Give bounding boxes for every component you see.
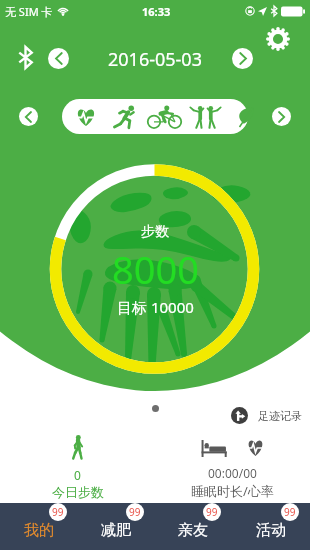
button[interactable]: 0 xyxy=(0,429,155,503)
button[interactable]: Next day xyxy=(232,48,253,69)
staticText: 8000 xyxy=(112,243,199,295)
button[interactable]: 活动 xyxy=(232,503,310,550)
button[interactable]: 足迹记录 xyxy=(231,407,302,424)
staticText: 99 xyxy=(206,505,218,519)
staticText: 0 xyxy=(74,467,81,483)
staticText: 99 xyxy=(52,505,64,519)
button[interactable]: Previous day xyxy=(48,48,69,69)
button[interactable]: 亲友 xyxy=(154,503,232,550)
staticText: 00:00/00 xyxy=(208,465,257,481)
button[interactable]: Settings xyxy=(262,23,293,54)
staticText: 99 xyxy=(129,505,141,519)
button[interactable]: Previous category xyxy=(19,107,38,126)
button[interactable]: 00:00/00 xyxy=(155,429,310,503)
button[interactable]: Dancing xyxy=(189,105,222,129)
staticText: 99 xyxy=(284,505,296,519)
button[interactable]: Cycling xyxy=(147,105,182,129)
staticText: 今日步数 xyxy=(52,484,104,500)
button[interactable]: 我的 xyxy=(0,503,77,550)
staticText: 我的 xyxy=(24,521,54,540)
button[interactable]: 减肥 xyxy=(77,503,154,550)
staticText: 减肥 xyxy=(101,521,131,540)
staticText: 亲友 xyxy=(178,521,208,540)
staticText: 活动 xyxy=(256,521,286,540)
staticText: 步数 xyxy=(141,223,169,241)
button[interactable]: Next category xyxy=(272,107,291,126)
staticText: 16:33 xyxy=(142,4,171,19)
button[interactable]: Yoga xyxy=(234,105,256,127)
button[interactable]: Bluetooth xyxy=(12,44,38,70)
staticText: 足迹记录 xyxy=(258,409,302,423)
button[interactable]: Running xyxy=(113,105,137,129)
staticText: 2016-05-03 xyxy=(108,47,202,72)
staticText: 睡眠时长/心率 xyxy=(191,482,274,500)
staticText: 目标 10000 xyxy=(117,297,194,317)
staticText: 无 SIM 卡 xyxy=(5,4,53,19)
button[interactable]: Heart rate xyxy=(76,108,96,127)
